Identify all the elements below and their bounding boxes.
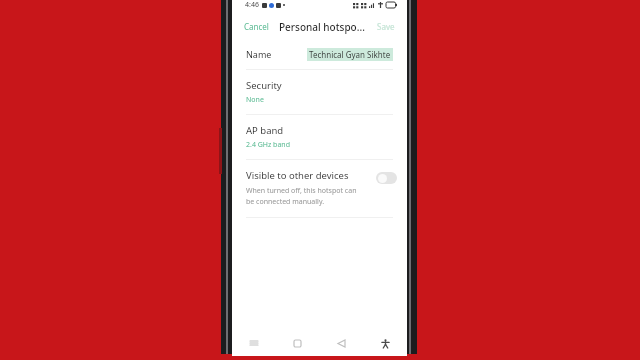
staticText: AP band xyxy=(246,124,284,137)
staticText: Security xyxy=(246,79,282,92)
staticText: Technical Gyan Sikhte xyxy=(309,49,391,60)
staticText: None xyxy=(246,95,264,105)
staticText: Visible to other devices xyxy=(246,169,349,182)
button[interactable]: AP band xyxy=(232,115,407,159)
button[interactable]: Visible to other devices xyxy=(232,160,407,217)
staticText: 4:46 xyxy=(245,0,259,10)
button[interactable]: Name xyxy=(232,39,407,69)
button[interactable]: Back xyxy=(319,330,363,356)
button[interactable]: Home xyxy=(275,330,319,356)
button[interactable]: Accessibility xyxy=(363,330,407,356)
button[interactable]: Visible to other devices toggle xyxy=(376,172,397,184)
staticText: Name xyxy=(246,48,272,60)
staticText: Save xyxy=(377,21,395,32)
button[interactable]: Recents xyxy=(232,330,275,356)
button[interactable]: Save xyxy=(373,18,399,35)
button[interactable]: Cancel xyxy=(240,18,273,35)
button[interactable]: Security xyxy=(232,70,407,114)
staticText: 2.4 GHz band xyxy=(246,140,290,150)
staticText: Cancel xyxy=(244,21,269,32)
staticText: When turned off, this hotspot can be con… xyxy=(246,186,357,206)
staticText: Personal hotspo... xyxy=(279,20,365,34)
